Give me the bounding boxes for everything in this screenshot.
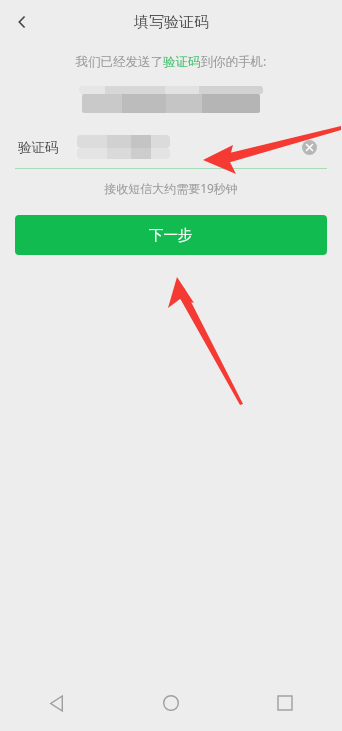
staticText: 下一步 (149, 226, 193, 244)
staticText: 接收短信大约需要19秒钟 (0, 180, 342, 196)
button[interactable]: 验证码 (0, 126, 342, 168)
staticText: 我们已经发送了验证码到你的手机: (0, 53, 342, 70)
button[interactable]: Back (0, 675, 114, 731)
staticText: 填写验证码 (134, 13, 209, 32)
button[interactable]: Back (0, 0, 44, 44)
button[interactable]: Recents (228, 675, 342, 731)
button[interactable]: Clear (292, 130, 326, 164)
button[interactable]: 下一步 (15, 215, 327, 255)
button[interactable]: Home (114, 675, 228, 731)
staticText: 验证码 (18, 139, 59, 156)
